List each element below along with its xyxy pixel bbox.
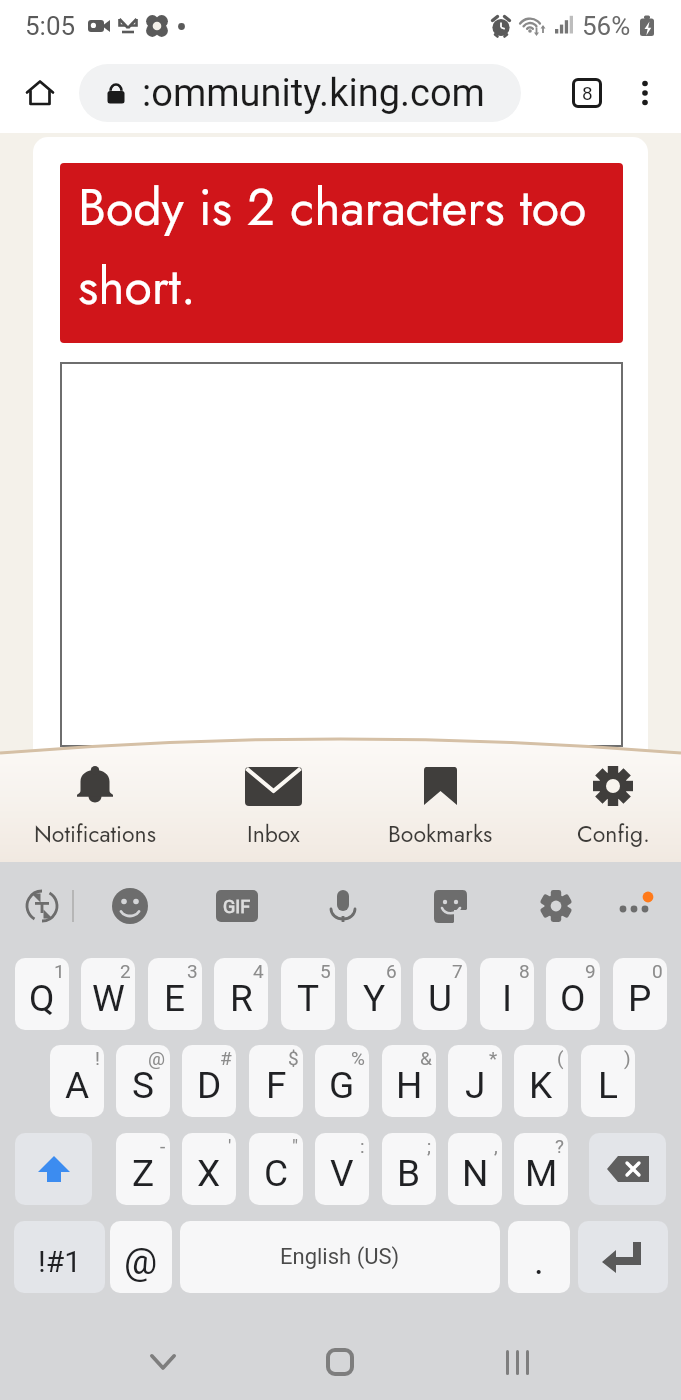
- button[interactable]: English (US): [180, 1221, 500, 1293]
- button[interactable]: .: [508, 1221, 570, 1293]
- staticText: C: [264, 1152, 289, 1195]
- staticText: 4: [253, 960, 264, 982]
- button[interactable]: Config.: [551, 762, 675, 850]
- staticText: 2: [120, 960, 131, 982]
- staticText: M: [525, 1152, 558, 1195]
- staticText: B: [397, 1152, 421, 1195]
- staticText: 8: [519, 960, 530, 982]
- button[interactable]: H: [382, 1045, 436, 1117]
- button[interactable]: O: [546, 958, 600, 1030]
- staticText: P: [628, 977, 652, 1020]
- staticText: ): [624, 1047, 631, 1069]
- staticText: Config.: [577, 817, 650, 850]
- button[interactable]: Notifications: [33, 762, 157, 850]
- staticText: !#1: [38, 1244, 82, 1279]
- button[interactable]: S: [116, 1045, 170, 1117]
- button[interactable]: !#1: [14, 1221, 105, 1293]
- staticText: ,: [494, 1135, 498, 1157]
- button[interactable]: J: [448, 1045, 502, 1117]
- button[interactable]: @: [110, 1221, 172, 1293]
- staticText: E: [164, 977, 186, 1020]
- button[interactable]: Emoji: [104, 880, 156, 932]
- button[interactable]: E: [148, 958, 202, 1030]
- staticText: !: [95, 1047, 100, 1069]
- button[interactable]: Back: [136, 1335, 190, 1389]
- staticText: 5:05: [25, 11, 76, 41]
- button[interactable]: V: [315, 1133, 369, 1205]
- button[interactable]: Shift: [15, 1133, 92, 1205]
- staticText: V: [330, 1152, 354, 1195]
- button[interactable]: P: [613, 958, 667, 1030]
- button[interactable]: Home: [14, 67, 66, 119]
- button[interactable]: Home: [313, 1335, 367, 1389]
- button[interactable]: Recent apps: [490, 1335, 544, 1389]
- button[interactable]: R: [214, 958, 268, 1030]
- button[interactable]: Tabs: [561, 67, 613, 119]
- button[interactable]: Stickers: [424, 880, 476, 932]
- button[interactable]: B: [382, 1133, 436, 1205]
- staticText: 9: [585, 960, 596, 982]
- button[interactable]: Translate: [16, 880, 68, 932]
- button[interactable]: Inbox: [211, 762, 335, 850]
- staticText: K: [529, 1064, 553, 1107]
- staticText: N: [462, 1152, 489, 1195]
- staticText: I: [502, 977, 513, 1020]
- staticText: :: [360, 1135, 365, 1157]
- button[interactable]: GIF: [211, 880, 263, 932]
- button[interactable]: T: [281, 958, 335, 1030]
- button[interactable]: [60, 362, 623, 747]
- button[interactable]: More options: [619, 67, 671, 119]
- staticText: 0: [652, 960, 663, 982]
- staticText: @: [124, 1240, 158, 1283]
- staticText: GIF: [223, 896, 251, 917]
- staticText: 56%: [582, 11, 631, 41]
- staticText: F: [266, 1064, 287, 1107]
- staticText: ?: [555, 1135, 564, 1157]
- staticText: J: [465, 1064, 486, 1107]
- button[interactable]: M: [514, 1133, 568, 1205]
- staticText: (: [557, 1047, 564, 1069]
- button[interactable]: Backspace: [589, 1133, 666, 1205]
- button[interactable]: Voice input: [317, 880, 369, 932]
- button[interactable]: K: [514, 1045, 568, 1117]
- button[interactable]: More: [608, 880, 660, 932]
- button[interactable]: Keyboard settings: [530, 880, 582, 932]
- button[interactable]: F: [249, 1045, 303, 1117]
- staticText: Z: [132, 1152, 155, 1195]
- staticText: W: [92, 977, 125, 1020]
- button[interactable]: Enter: [578, 1221, 668, 1293]
- button[interactable]: L: [581, 1045, 635, 1117]
- button[interactable]: X: [182, 1133, 236, 1205]
- staticText: T: [297, 977, 320, 1020]
- staticText: 6: [386, 960, 397, 982]
- staticText: Q: [29, 977, 55, 1020]
- staticText: -: [160, 1135, 166, 1157]
- button[interactable]: G: [315, 1045, 369, 1117]
- staticText: O: [560, 977, 586, 1020]
- button[interactable]: Bookmarks: [378, 762, 502, 850]
- staticText: Bookmarks: [388, 817, 493, 850]
- staticText: Inbox: [247, 817, 300, 850]
- button[interactable]: Q: [15, 958, 69, 1030]
- button[interactable]: A: [50, 1045, 104, 1117]
- button[interactable]: Y: [347, 958, 401, 1030]
- button[interactable]: :ommunity.king.com: [79, 64, 521, 122]
- staticText: 1: [54, 960, 65, 982]
- staticText: @: [148, 1047, 166, 1069]
- button[interactable]: I: [480, 958, 534, 1030]
- staticText: A: [65, 1064, 90, 1107]
- staticText: U: [428, 977, 452, 1020]
- button[interactable]: N: [448, 1133, 502, 1205]
- button[interactable]: W: [81, 958, 135, 1030]
- button[interactable]: C: [249, 1133, 303, 1205]
- staticText: X: [197, 1152, 221, 1195]
- button[interactable]: U: [413, 958, 467, 1030]
- staticText: *: [489, 1047, 498, 1069]
- staticText: Notifications: [34, 817, 156, 850]
- button[interactable]: Z: [116, 1133, 170, 1205]
- staticText: R: [230, 977, 253, 1020]
- staticText: %: [351, 1047, 365, 1069]
- button[interactable]: D: [182, 1045, 236, 1117]
- staticText: Body is 2 characters too short.: [78, 171, 603, 323]
- staticText: 5: [320, 960, 331, 982]
